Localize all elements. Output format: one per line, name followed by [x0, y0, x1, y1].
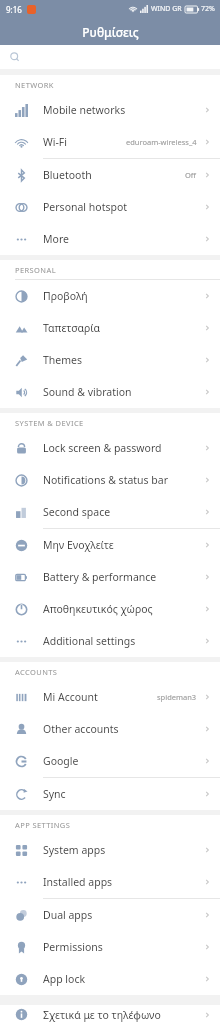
- staticText: Personal hotspot: [43, 200, 128, 214]
- button[interactable]: Notifications & status bar: [0, 464, 220, 496]
- staticText: Other accounts: [43, 722, 119, 736]
- staticText: WIND GR: [151, 4, 182, 14]
- button[interactable]: Battery & performance: [0, 561, 220, 593]
- staticText: spideman3: [157, 692, 197, 702]
- staticText: Lock screen & password: [43, 441, 162, 455]
- staticText: APP SETTINGS: [15, 820, 71, 830]
- staticText: Themes: [43, 353, 83, 367]
- staticText: Second space: [43, 505, 111, 519]
- button[interactable]: Προβολή: [0, 280, 220, 312]
- staticText: Notifications & status bar: [43, 473, 169, 487]
- staticText: Installed apps: [43, 875, 113, 889]
- staticText: Αποθηκευτικός χώρος: [43, 602, 153, 616]
- staticText: Bluetooth: [43, 168, 92, 182]
- staticText: Dual apps: [43, 908, 93, 922]
- staticText: System apps: [43, 843, 106, 857]
- staticText: Προβολή: [43, 289, 88, 303]
- staticText: 9:16: [6, 4, 22, 15]
- button[interactable]: Lock screen & password: [0, 432, 220, 464]
- staticText: Permissions: [43, 940, 103, 954]
- staticText: PERSONAL: [15, 265, 56, 275]
- button[interactable]: More: [0, 223, 220, 255]
- staticText: Wi-Fi: [43, 135, 68, 149]
- button[interactable]: Permissions: [0, 931, 220, 963]
- button[interactable]: Additional settings: [0, 625, 220, 657]
- button[interactable]: Μην Ενοχλείτε: [0, 529, 220, 561]
- button[interactable]: App lock: [0, 963, 220, 995]
- staticText: Google: [43, 754, 79, 768]
- button[interactable]: Ταπετσαρία: [0, 312, 220, 344]
- button[interactable]: Other accounts: [0, 713, 220, 745]
- staticText: ACCOUNTS: [15, 667, 58, 677]
- button[interactable]: Personal hotspot: [0, 191, 220, 223]
- staticText: Mobile networks: [43, 103, 126, 117]
- staticText: Ρυθμίσεις: [82, 24, 139, 40]
- staticText: Μην Ενοχλείτε: [43, 538, 114, 552]
- button[interactable]: Sound & vibration: [0, 376, 220, 408]
- button[interactable]: Mi Account: [0, 681, 220, 713]
- button[interactable]: Αποθηκευτικός χώρος: [0, 593, 220, 625]
- button[interactable]: Σχετικά με το τηλέφωνο: [0, 1005, 220, 1024]
- staticText: Sync: [43, 787, 66, 801]
- button[interactable]: System apps: [0, 834, 220, 866]
- staticText: Battery & performance: [43, 570, 157, 584]
- button[interactable]: Bluetooth: [0, 159, 220, 191]
- button[interactable]: Sync: [0, 778, 220, 810]
- staticText: Off: [185, 170, 197, 180]
- button[interactable]: Ρυθμίσεις: [0, 18, 220, 45]
- staticText: App lock: [43, 972, 86, 986]
- staticText: Σχετικά με το τηλέφωνο: [43, 1008, 161, 1022]
- staticText: 72%: [201, 4, 215, 14]
- button[interactable]: Dual apps: [0, 899, 220, 931]
- staticText: NETWORK: [15, 80, 54, 90]
- button[interactable]: Installed apps: [0, 866, 220, 898]
- button[interactable]: Search settings: [0, 45, 220, 69]
- staticText: Sound & vibration: [43, 385, 132, 399]
- staticText: eduroam-wireless_4: [126, 137, 197, 147]
- button[interactable]: Google: [0, 745, 220, 777]
- staticText: Additional settings: [43, 634, 136, 648]
- staticText: Ταπετσαρία: [43, 321, 101, 335]
- staticText: Mi Account: [43, 690, 98, 704]
- button[interactable]: Second space: [0, 496, 220, 528]
- button[interactable]: Wi-Fi: [0, 126, 220, 158]
- staticText: More: [43, 232, 69, 246]
- button[interactable]: Mobile networks: [0, 94, 220, 126]
- button[interactable]: Themes: [0, 344, 220, 376]
- staticText: SYSTEM & DEVICE: [15, 418, 84, 428]
